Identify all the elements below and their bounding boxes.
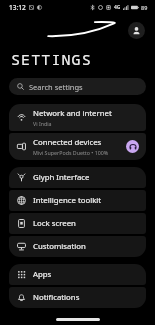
staticText: 13:12	[9, 3, 26, 12]
button[interactable]: Intelligence toolkit	[9, 190, 146, 211]
staticText: 89	[141, 4, 148, 11]
staticText: Apps	[33, 269, 52, 280]
staticText: Lock screen	[33, 218, 76, 229]
button[interactable]: Search settings	[9, 78, 146, 95]
button[interactable]: Notifications	[9, 287, 146, 308]
button[interactable]: Customisation	[9, 236, 146, 257]
staticText: Vi India	[33, 120, 52, 127]
staticText: Customisation	[33, 241, 86, 252]
button[interactable]: Account	[128, 22, 145, 39]
button[interactable]: Connected devices	[9, 133, 146, 160]
staticText: Intelligence toolkit	[33, 195, 102, 206]
staticText: Mivi SuperPods Duetto • 100%	[33, 149, 109, 156]
button[interactable]: Network and internet	[9, 104, 146, 131]
staticText: SETTINGS	[11, 49, 92, 69]
staticText: Search settings	[29, 82, 83, 92]
staticText: Glyph Interface	[33, 172, 90, 183]
button[interactable]: Glyph Interface	[9, 167, 146, 188]
staticText: 4G	[114, 4, 121, 11]
staticText: Connected devices	[33, 137, 102, 148]
button[interactable]: Apps	[9, 264, 146, 285]
staticText: Network and internet	[33, 108, 112, 119]
button[interactable]: Lock screen	[9, 213, 146, 234]
staticText: Notifications	[33, 292, 80, 303]
